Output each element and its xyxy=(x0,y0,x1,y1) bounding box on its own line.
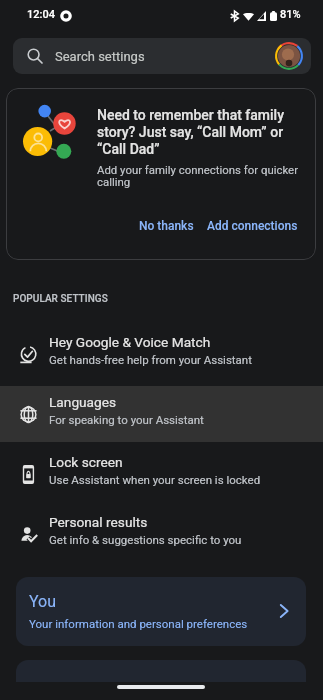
button[interactable]: Languages xyxy=(0,386,323,442)
staticText: Your information and personal preference… xyxy=(29,617,248,630)
staticText: Personal results xyxy=(49,514,148,530)
staticText: Lock screen xyxy=(49,454,123,470)
button[interactable]: Personal results xyxy=(0,506,323,562)
staticText: Search settings xyxy=(55,49,145,64)
staticText: POPULAR SETTINGS xyxy=(13,293,108,305)
staticText: Languages xyxy=(49,394,117,410)
button[interactable]: Add connections xyxy=(197,212,308,240)
staticText: No thanks xyxy=(139,219,194,233)
staticText: For speaking to your Assistant xyxy=(49,413,204,426)
other: Open xyxy=(280,605,288,617)
staticText: Use Assistant when your screen is locked xyxy=(49,473,261,486)
staticText: 81% xyxy=(280,8,301,21)
button[interactable]: You xyxy=(16,577,306,646)
button[interactable]: Hey Google & Voice Match xyxy=(0,326,323,382)
staticText: Add your family connections for quicker … xyxy=(97,163,305,189)
staticText: Hey Google & Voice Match xyxy=(49,334,211,350)
button[interactable]: No thanks xyxy=(129,212,204,240)
button[interactable]: Search settings xyxy=(13,38,311,74)
staticText: Need to remember that family story? Just… xyxy=(97,107,297,158)
staticText: Add connections xyxy=(207,219,298,233)
staticText: Get info & suggestions specific to you xyxy=(49,533,242,546)
button[interactable]: Google Account xyxy=(275,42,303,70)
staticText: 12:04 xyxy=(27,8,55,21)
button[interactable]: Lock screen xyxy=(0,446,323,502)
button[interactable]: Need to remember that family story? Just… xyxy=(6,88,316,260)
staticText: You xyxy=(29,592,57,611)
staticText: Get hands-free help from your Assistant xyxy=(49,353,252,366)
